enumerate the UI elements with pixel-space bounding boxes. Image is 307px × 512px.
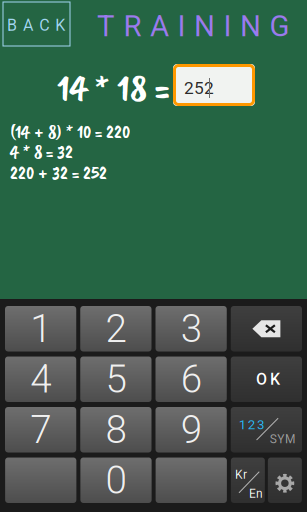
staticText: 252	[184, 78, 214, 98]
button[interactable]: BACK	[3, 2, 70, 46]
staticText: 14 * 18 =	[57, 65, 169, 112]
staticText: 5	[105, 357, 126, 402]
button[interactable]: 2	[80, 306, 151, 351]
staticText: 7	[30, 407, 51, 452]
button[interactable]: 4	[5, 356, 76, 402]
button[interactable]: 9	[155, 407, 227, 452]
staticText: (14 + 8) * 10 = 220	[10, 120, 130, 143]
staticText: 3	[257, 417, 264, 433]
staticText: 4	[30, 357, 51, 402]
staticText: 4 * 8 = 32	[10, 140, 73, 163]
staticText: 2	[105, 306, 126, 351]
staticText: 220 + 32 = 252	[10, 161, 107, 184]
button[interactable]: Backspace	[231, 306, 302, 351]
button[interactable]: 1	[5, 306, 76, 351]
staticText: 1	[30, 306, 51, 351]
button[interactable]: 8	[80, 407, 151, 452]
staticText: En	[249, 486, 263, 501]
staticText: 9	[181, 407, 202, 452]
staticText: Kr	[235, 467, 247, 482]
staticText: OK	[256, 370, 280, 389]
staticText: BACK	[7, 16, 65, 35]
staticText: TRAINING	[97, 9, 289, 43]
staticText: 8	[105, 407, 126, 452]
button[interactable]: 7	[5, 407, 76, 452]
button[interactable]: OK	[231, 356, 302, 402]
button[interactable]: 3	[155, 306, 227, 351]
button[interactable]: Language	[231, 457, 265, 503]
button[interactable]: Key	[156, 457, 227, 503]
staticText: 0	[105, 458, 126, 503]
staticText: 3	[181, 306, 202, 351]
button[interactable]: 5	[80, 356, 151, 402]
staticText: SYM	[270, 432, 295, 446]
button[interactable]: Settings	[268, 457, 302, 503]
staticText: 6	[181, 357, 202, 402]
button[interactable]: Key	[5, 457, 76, 503]
button[interactable]: 0	[80, 457, 152, 503]
staticText: 1	[239, 417, 246, 433]
button[interactable]: 6	[155, 356, 227, 402]
staticText: 2	[248, 417, 255, 433]
button[interactable]: Symbols	[231, 407, 302, 452]
